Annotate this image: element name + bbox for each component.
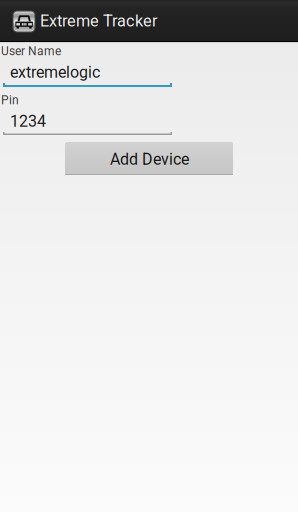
staticText: Pin: [1, 93, 19, 107]
staticText: extremelogic: [10, 63, 100, 82]
button[interactable]: Add Device: [65, 142, 233, 175]
staticText: User Name: [1, 44, 61, 58]
button[interactable]: Pin: [0, 90, 172, 136]
staticText: Extreme Tracker: [40, 11, 158, 31]
button[interactable]: Extreme Tracker home: [13, 0, 41, 41]
staticText: 1234: [10, 112, 46, 131]
button[interactable]: User Name: [0, 42, 172, 88]
staticText: Add Device: [110, 150, 189, 169]
